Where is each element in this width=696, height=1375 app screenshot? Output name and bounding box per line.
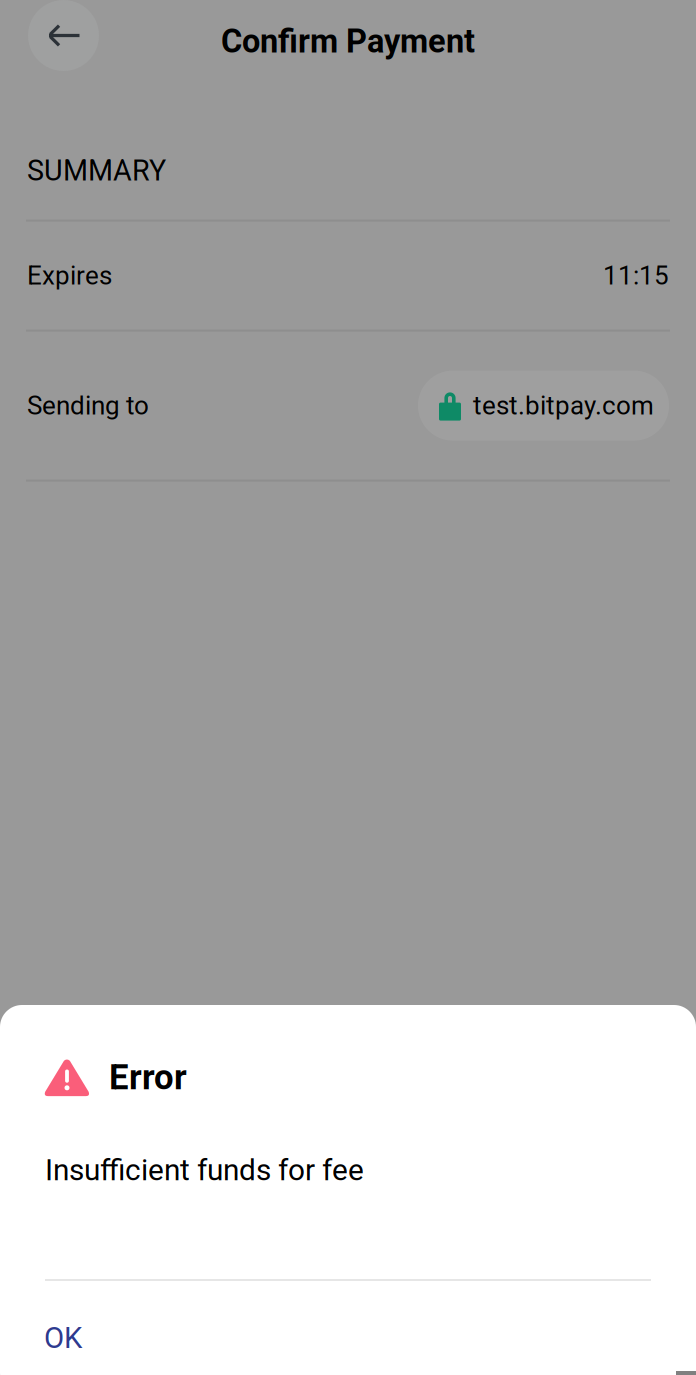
staticText: Insufficient funds for fee bbox=[45, 1153, 364, 1187]
staticText: 11:15 bbox=[603, 260, 669, 291]
staticText: Error bbox=[109, 1057, 187, 1098]
button[interactable]: Sending to bbox=[0, 332, 696, 480]
button[interactable]: OK bbox=[0, 1281, 696, 1375]
staticText: test.bitpay.com bbox=[473, 390, 654, 421]
staticText: Confirm Payment bbox=[221, 22, 475, 60]
staticText: Expires bbox=[27, 260, 112, 291]
button[interactable]: Expires bbox=[0, 222, 696, 330]
staticText: Sending to bbox=[27, 390, 149, 421]
staticText: SUMMARY bbox=[27, 154, 166, 188]
staticText: OK bbox=[44, 1321, 82, 1355]
button[interactable]: Back bbox=[28, 0, 99, 71]
